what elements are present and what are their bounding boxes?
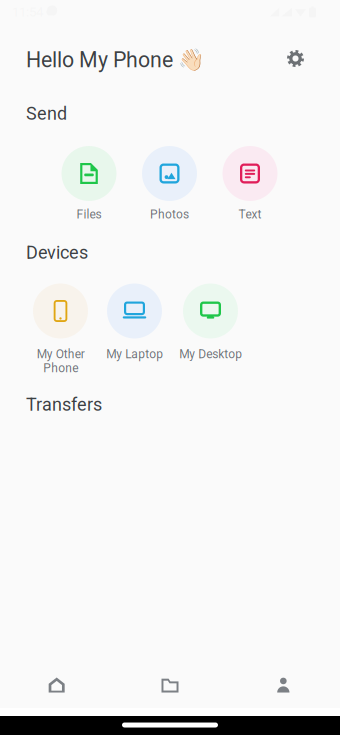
button[interactable] [61,146,116,201]
button[interactable] [33,283,88,338]
button[interactable] [107,283,162,338]
staticText: Hello My Phone 👋🏻 [26,47,205,72]
button[interactable] [222,146,277,201]
staticText: Files [76,207,101,222]
staticText: Text [238,207,261,222]
button[interactable] [142,146,197,201]
button[interactable]: Files [113,660,227,710]
staticText: My Laptop [106,347,163,361]
button[interactable] [183,283,238,338]
staticText: Transfers [26,394,102,415]
staticText: Send [26,103,67,124]
button[interactable]: Settings [277,40,314,77]
staticText: My Other Phone [36,347,84,375]
button[interactable]: Home [0,660,113,710]
staticText: My Desktop [179,347,242,361]
staticText: Devices [26,242,88,263]
staticText: Photos [150,207,189,222]
button[interactable]: Profile [227,660,340,710]
